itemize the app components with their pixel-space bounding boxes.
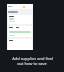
button[interactable] bbox=[8, 15, 32, 24]
button[interactable]: App bar bbox=[7, 4, 33, 9]
button[interactable] bbox=[8, 26, 32, 37]
staticText: Add supplies and find bbox=[12, 56, 53, 61]
staticText: out how to save bbox=[17, 61, 47, 66]
button[interactable] bbox=[8, 39, 32, 50]
